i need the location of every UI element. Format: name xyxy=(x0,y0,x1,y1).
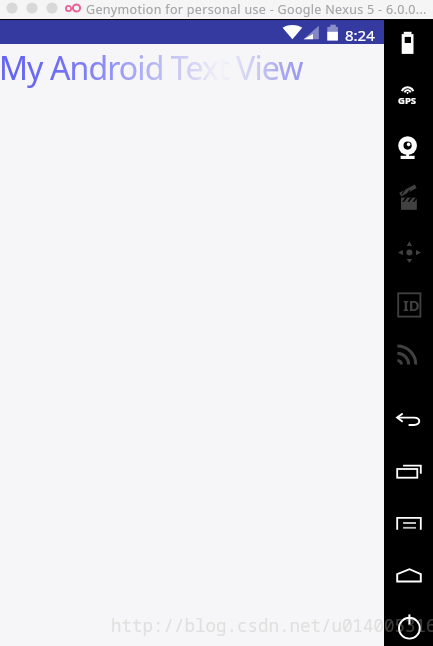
staticText: http://blog.csdn.net/u014005316 xyxy=(111,613,433,637)
staticText: Genymotion for personal use - Google Nex… xyxy=(86,1,427,18)
staticText: GPS xyxy=(398,94,417,107)
staticText: ID xyxy=(403,295,420,315)
other: Genymotion tool bar xyxy=(384,20,433,646)
staticText: 8:24 xyxy=(345,25,375,45)
staticText: My Android Text View xyxy=(0,46,303,90)
